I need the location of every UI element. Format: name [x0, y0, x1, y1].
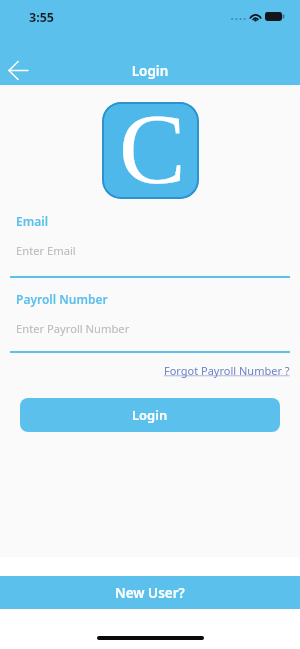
- staticText: Login: [0, 62, 300, 80]
- staticText: 3:55: [29, 9, 54, 26]
- staticText: Enter Payroll Number: [16, 321, 130, 336]
- button[interactable]: Forgot Payroll Number ?: [164, 363, 290, 378]
- staticText: Login: [132, 406, 168, 424]
- staticText: C: [119, 102, 186, 190]
- staticText: Payroll Number: [16, 291, 108, 307]
- button[interactable]: New User?: [0, 576, 300, 609]
- staticText: Enter Email: [16, 243, 76, 258]
- staticText: New User?: [115, 584, 185, 602]
- staticText: Email: [16, 213, 49, 229]
- button[interactable]: Back: [2, 54, 34, 86]
- button[interactable]: Login: [20, 398, 280, 432]
